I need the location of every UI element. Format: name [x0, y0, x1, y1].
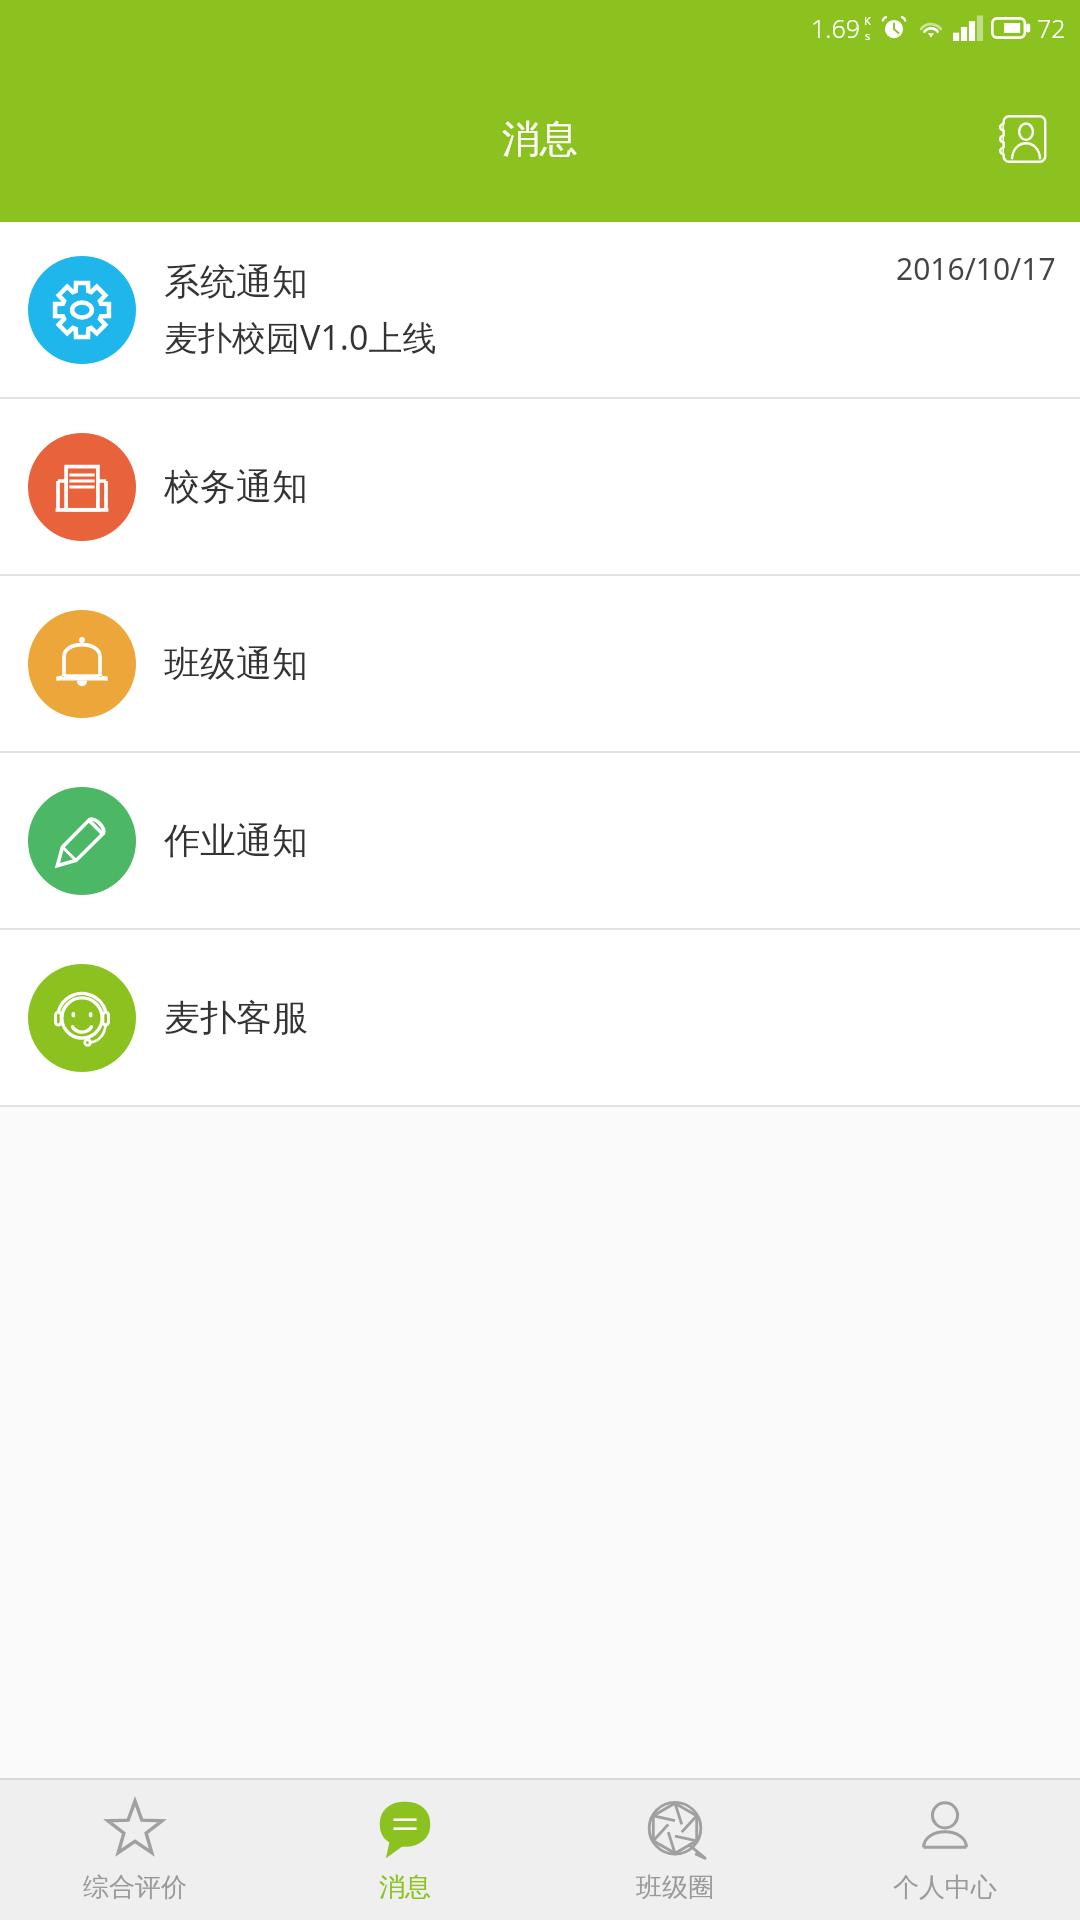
staticText: K: [864, 13, 871, 28]
staticText: 麦扑客服: [164, 995, 308, 1040]
staticText: 综合评价: [83, 1871, 187, 1904]
button[interactable]: 作业通知: [0, 753, 1080, 928]
staticText: 班级通知: [164, 641, 308, 686]
button[interactable]: 校务通知: [0, 399, 1080, 574]
staticText: 1.69: [811, 11, 860, 45]
button[interactable]: 班级通知: [0, 576, 1080, 751]
staticText: 72: [1037, 11, 1066, 45]
staticText: 消息: [379, 1871, 431, 1904]
staticText: 消息: [502, 115, 578, 163]
staticText: s: [865, 28, 871, 43]
staticText: 2016/10/17: [896, 248, 1056, 289]
button[interactable]: 麦扑客服: [0, 930, 1080, 1105]
button[interactable]: 个人中心: [810, 1780, 1080, 1920]
staticText: 系统通知: [164, 259, 308, 304]
staticText: 校务通知: [164, 464, 308, 509]
button[interactable]: 班级圈: [540, 1780, 810, 1920]
staticText: 作业通知: [164, 818, 308, 863]
button[interactable]: 消息: [270, 1780, 540, 1920]
button[interactable]: 综合评价: [0, 1780, 270, 1920]
button[interactable]: 通讯录: [986, 103, 1058, 175]
staticText: 个人中心: [893, 1871, 997, 1904]
button[interactable]: 系统通知: [0, 222, 1080, 397]
staticText: 麦扑校园V1.0上线: [164, 314, 437, 360]
staticText: 班级圈: [636, 1871, 714, 1904]
